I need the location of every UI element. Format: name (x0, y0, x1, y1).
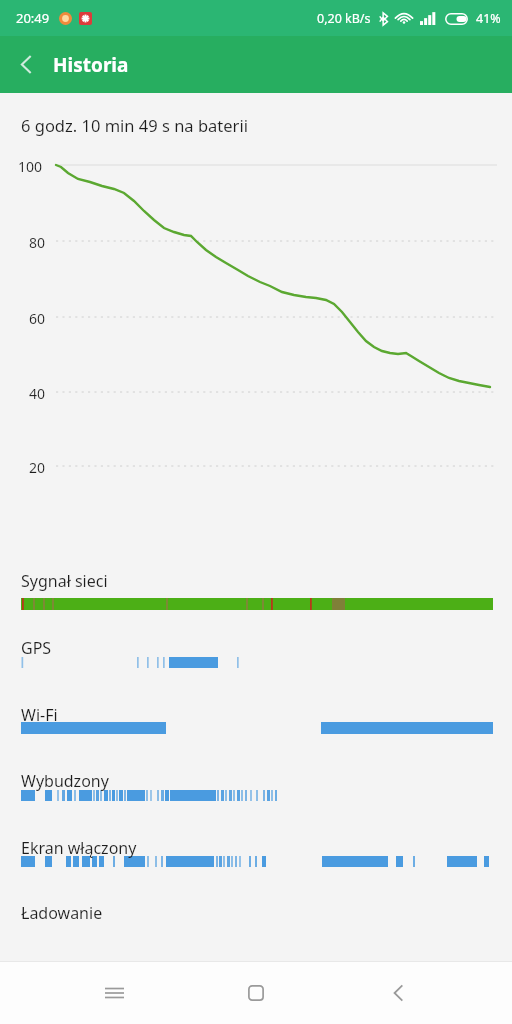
button[interactable]: Back (0, 38, 53, 91)
staticText: Ekran włączony (21, 837, 137, 859)
staticText: Wybudzony (21, 770, 109, 792)
staticText: 20 (29, 458, 46, 477)
staticText: Ładowanie (21, 902, 103, 924)
staticText: 60 (29, 309, 46, 328)
staticText: Historia (53, 52, 129, 78)
staticText: Sygnał sieci (21, 570, 108, 592)
button[interactable]: Home (228, 965, 284, 1021)
staticText: 40 (29, 384, 46, 403)
staticText: Wi-Fi (21, 704, 58, 726)
button[interactable]: Recent apps (86, 965, 142, 1021)
staticText: 20:49 (16, 9, 50, 27)
staticText: 80 (29, 233, 46, 252)
button[interactable]: Back (370, 965, 426, 1021)
staticText: 0,20 kB/s (317, 10, 371, 27)
staticText: 6 godz. 10 min 49 s na baterii (21, 114, 248, 136)
staticText: GPS (21, 637, 52, 659)
staticText: 100 (18, 157, 43, 176)
staticText: 41% (476, 10, 501, 27)
